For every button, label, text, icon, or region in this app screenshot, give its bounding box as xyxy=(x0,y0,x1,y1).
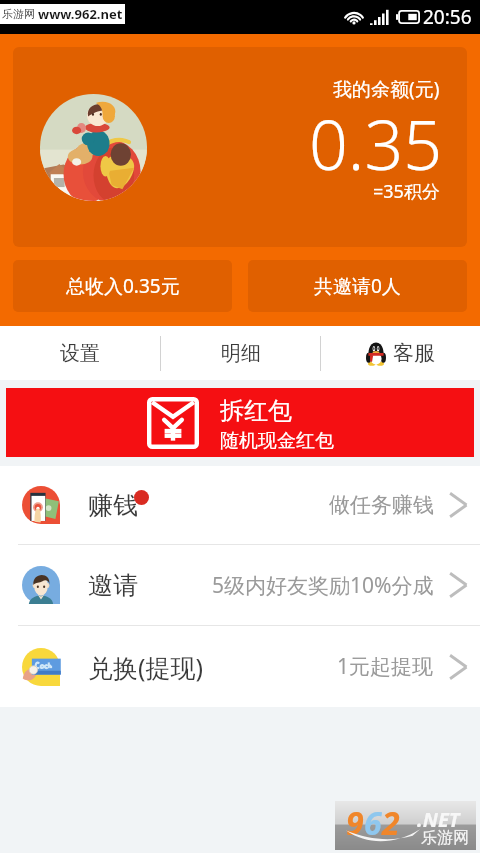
staticText: 1元起提现 xyxy=(337,652,434,681)
staticText: 2 xyxy=(382,801,400,845)
staticText: 共邀请0人 xyxy=(314,273,401,299)
staticText: 做任务赚钱 xyxy=(329,492,434,518)
staticText: 设置 xyxy=(60,341,100,366)
button[interactable]: 设置 xyxy=(0,326,160,380)
staticText: 0.35 xyxy=(309,97,443,190)
staticText: 20:56 xyxy=(423,4,472,30)
staticText: 邀请 xyxy=(88,570,138,601)
staticText: 总收入0.35元 xyxy=(66,273,180,299)
staticText: 5级内好友奖励10%分成 xyxy=(212,571,434,600)
staticText: .NET xyxy=(417,806,460,833)
staticText: =35积分 xyxy=(373,179,440,204)
staticText: 乐游网 xyxy=(2,7,35,21)
button[interactable]: 拆红包 xyxy=(6,388,474,457)
staticText: 9 xyxy=(346,801,364,845)
button[interactable]: 客服 xyxy=(321,326,480,380)
button[interactable]: 兑换(提现) xyxy=(0,626,480,707)
button[interactable]: 我的余额(元) xyxy=(13,47,467,247)
button[interactable]: 邀请 xyxy=(0,545,480,625)
staticText: 乐游网 xyxy=(421,828,469,848)
button[interactable]: 赚钱 xyxy=(0,466,480,544)
button[interactable]: 共邀请0人 xyxy=(248,260,467,312)
staticText: 我的余额(元) xyxy=(333,76,440,102)
staticText: 随机现金红包 xyxy=(220,429,334,453)
staticText: 赚钱 xyxy=(88,490,138,521)
button[interactable]: 明细 xyxy=(161,326,320,380)
staticText: 客服 xyxy=(393,340,435,366)
staticText: www.962.net xyxy=(38,5,123,23)
staticText: 拆红包 xyxy=(220,396,292,426)
staticText: 兑换(提现) xyxy=(88,650,204,684)
staticText: 6 xyxy=(364,801,382,845)
staticText: 明细 xyxy=(221,341,261,366)
button[interactable]: 总收入0.35元 xyxy=(13,260,232,312)
